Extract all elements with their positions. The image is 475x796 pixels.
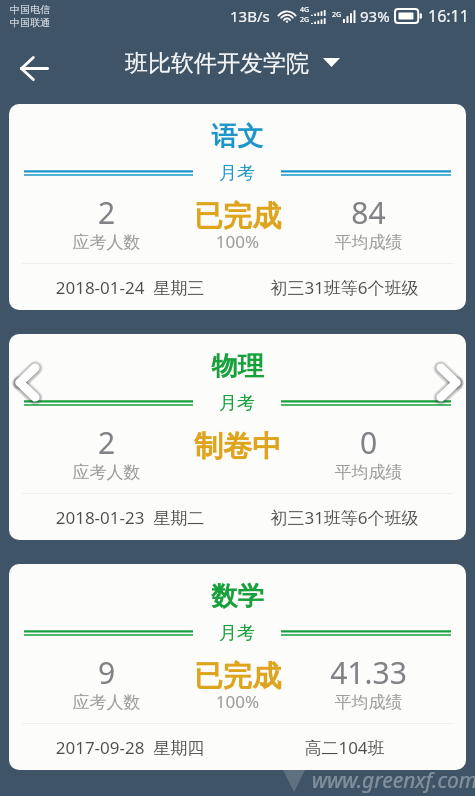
staticText: 中国电信 (10, 3, 50, 16)
staticText: 月考 (219, 392, 255, 415)
staticText: 2 (41, 422, 172, 463)
staticText: 2017-09-28 星期四 (23, 736, 237, 759)
button[interactable]: Back (10, 46, 58, 90)
staticText: 4G (300, 5, 310, 15)
staticText: 物理 (9, 350, 466, 383)
staticText: 0 (303, 422, 434, 463)
staticText: 41.33 (303, 652, 434, 693)
staticText: 100% (172, 230, 303, 253)
staticText: 月考 (219, 162, 255, 185)
staticText: 初三31班等6个班级 (237, 506, 452, 529)
button[interactable]: 班比软件开发学院 (125, 49, 340, 78)
button[interactable]: Next (436, 363, 461, 402)
staticText: 中国联通 (10, 16, 50, 29)
button[interactable]: 语文 (9, 104, 466, 310)
staticText: 平均成绩 (303, 462, 434, 483)
staticText: 84 (303, 192, 434, 233)
staticText: 应考人数 (41, 692, 172, 713)
staticText: 平均成绩 (303, 692, 434, 713)
staticText: 月考 (219, 622, 255, 645)
staticText: 2 (41, 192, 172, 233)
staticText: 93% (360, 6, 390, 26)
staticText: 初三31班等6个班级 (237, 276, 452, 299)
staticText: 高二104班 (237, 736, 452, 759)
staticText: 100% (172, 690, 303, 713)
staticText: 13B/s (230, 6, 270, 26)
staticText: 应考人数 (41, 232, 172, 253)
staticText: 数学 (9, 580, 466, 613)
button[interactable]: 物理 (9, 334, 466, 540)
staticText: 语文 (9, 120, 466, 153)
staticText: 已完成 (172, 198, 303, 235)
button[interactable]: Previous (15, 363, 40, 402)
staticText: 2018-01-24 星期三 (23, 276, 237, 299)
staticText: 制卷中 (172, 428, 303, 465)
staticText: 2G (300, 15, 310, 25)
button[interactable]: 数学 (9, 564, 466, 770)
staticText: 9 (41, 652, 172, 693)
staticText: 平均成绩 (303, 232, 434, 253)
staticText: 2G (332, 10, 342, 20)
staticText: 2018-01-23 星期二 (23, 506, 237, 529)
staticText: 应考人数 (41, 462, 172, 483)
staticText: 已完成 (172, 658, 303, 695)
staticText: 16:11 (428, 5, 469, 27)
staticText: 班比软件开发学院 (125, 49, 309, 78)
staticText: www.greenxf.com (312, 766, 475, 795)
